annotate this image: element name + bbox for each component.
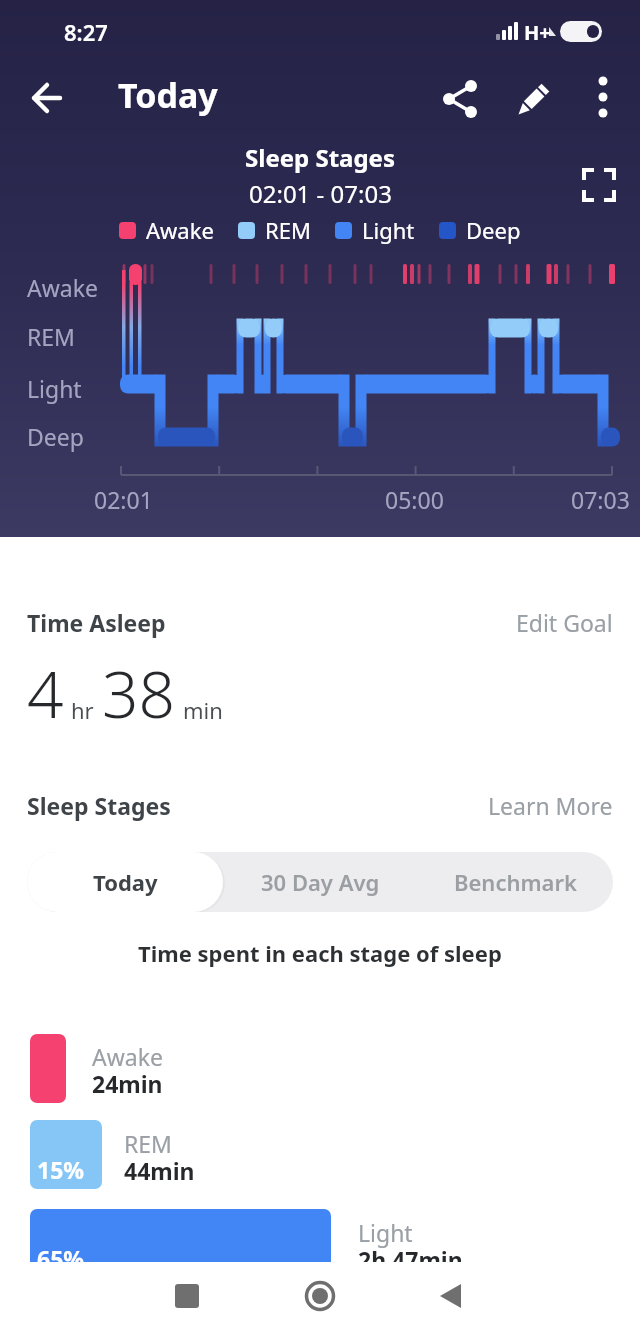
staticText: 2h 47min — [358, 1244, 463, 1275]
staticText: Edit Goal — [516, 607, 613, 638]
staticText: 65% — [37, 1243, 85, 1274]
button[interactable]: 30 Day Avg — [223, 852, 418, 912]
staticText: min — [183, 695, 223, 725]
button[interactable]: Learn More — [0, 790, 613, 821]
staticText: H+ — [524, 19, 551, 46]
staticText: 02:01 — [94, 484, 153, 515]
button[interactable]: Today — [27, 852, 223, 912]
button[interactable]: Edit Goal — [0, 607, 613, 638]
staticText: Awake — [92, 1041, 163, 1072]
staticText: Deep — [27, 421, 84, 452]
button[interactable] — [163, 1272, 211, 1320]
staticText: Learn More — [488, 790, 613, 821]
staticText: 07:03 — [571, 484, 630, 515]
staticText: Today — [118, 72, 218, 118]
staticText: 30 Day Avg — [261, 867, 380, 897]
staticText: Awake — [27, 272, 98, 303]
staticText: 38 — [102, 650, 176, 737]
button[interactable] — [438, 72, 490, 124]
staticText: Sleep Stages — [245, 141, 395, 174]
staticText: 02:01 - 07:03 — [249, 177, 392, 210]
button[interactable] — [580, 72, 624, 116]
staticText: Benchmark — [454, 867, 577, 897]
staticText: Light — [358, 1217, 413, 1248]
staticText: REM — [265, 215, 311, 245]
staticText: Deep — [466, 215, 521, 245]
staticText: Light — [27, 373, 82, 404]
staticText: 8:27 — [64, 17, 108, 47]
staticText: 24min — [92, 1068, 163, 1099]
staticText: Time spent in each stage of sleep — [138, 938, 502, 968]
staticText: 4 — [27, 650, 64, 737]
button[interactable] — [18, 70, 72, 124]
staticText: 44min — [124, 1155, 195, 1186]
staticText: REM — [27, 321, 75, 352]
button[interactable] — [510, 72, 562, 124]
staticText: Light — [362, 215, 415, 245]
button[interactable] — [578, 164, 620, 206]
staticText: Today — [93, 867, 158, 897]
button[interactable]: Benchmark — [418, 852, 613, 912]
staticText: Awake — [146, 215, 214, 245]
staticText: 15% — [37, 1154, 85, 1185]
staticText: hr — [71, 695, 94, 725]
staticText: Time Asleep — [27, 607, 166, 638]
button[interactable] — [296, 1272, 344, 1320]
staticText: 05:00 — [385, 484, 444, 515]
staticText: Sleep Stages — [27, 790, 171, 821]
staticText: REM — [124, 1128, 172, 1159]
button[interactable] — [426, 1272, 474, 1320]
